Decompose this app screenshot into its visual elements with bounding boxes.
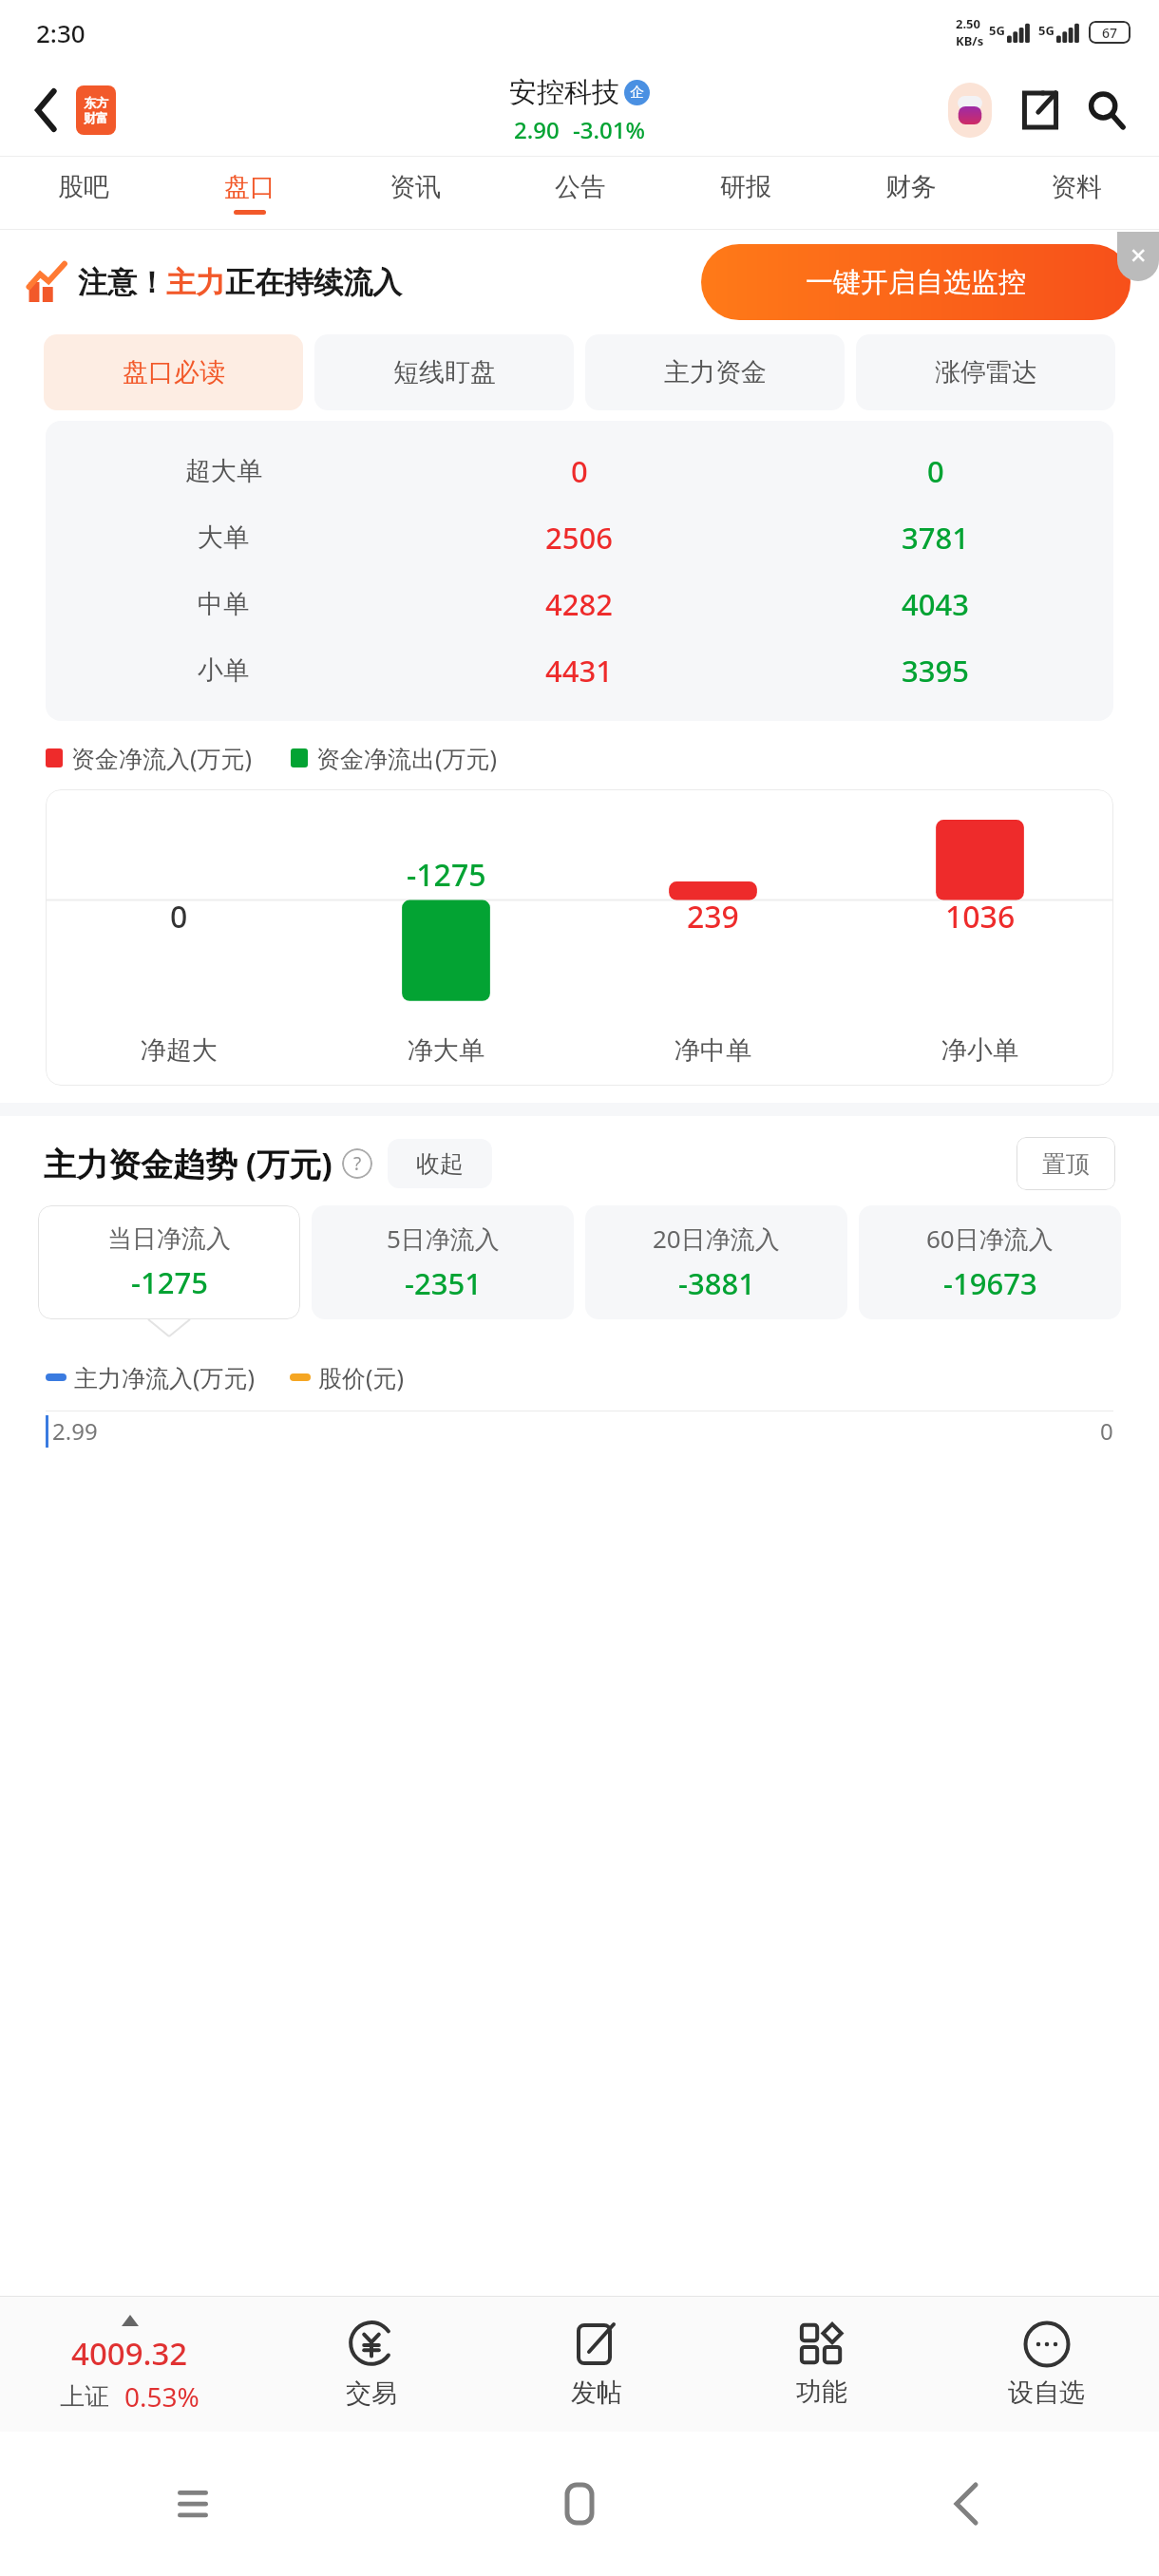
staticText: 正在持续流入 xyxy=(225,264,402,301)
button[interactable]: 设自选 xyxy=(934,2297,1159,2432)
staticText: 发帖 xyxy=(571,2377,622,2409)
staticText: -19673 xyxy=(943,1263,1037,1303)
staticText: 功能 xyxy=(796,2376,847,2408)
staticText: 研报 xyxy=(720,171,771,203)
button[interactable]: 60日净流入 xyxy=(859,1205,1121,1319)
staticText: 净小单 xyxy=(941,1034,1018,1067)
staticText: 一键开启自选监控 xyxy=(806,265,1026,300)
button[interactable]: East Money xyxy=(76,85,116,135)
staticText: 股吧 xyxy=(58,171,109,203)
button[interactable]: Home xyxy=(558,2482,601,2526)
staticText: 0.53% xyxy=(124,2378,199,2415)
staticText: -1275 xyxy=(131,1262,208,1302)
button[interactable]: 盘口 xyxy=(166,157,332,229)
staticText: 5G xyxy=(989,22,1005,39)
staticText: 盘口必读 xyxy=(123,356,225,388)
staticText: -3881 xyxy=(678,1263,755,1303)
staticText: 60日净流入 xyxy=(926,1222,1054,1256)
button[interactable]: 交易 xyxy=(258,2297,484,2432)
button[interactable]: 功能 xyxy=(709,2297,934,2432)
button[interactable]: 股吧 xyxy=(0,157,166,229)
staticText: 4431 xyxy=(545,651,613,691)
button[interactable]: 当日净流入 xyxy=(38,1205,300,1319)
staticText: 资料 xyxy=(1051,171,1102,203)
staticText: 超大单 xyxy=(185,455,262,487)
staticText: 主力资金 xyxy=(664,356,767,388)
staticText: ✕ xyxy=(1130,244,1148,269)
button[interactable]: Recents xyxy=(171,2482,215,2526)
staticText: 资金净流入(万元) xyxy=(71,742,253,774)
button[interactable]: 一键开启自选监控 xyxy=(701,244,1130,320)
staticText: 4282 xyxy=(545,584,613,624)
staticText: 67 xyxy=(1102,24,1118,42)
staticText: 4009.32 xyxy=(71,2332,188,2375)
staticText: 0 xyxy=(1100,1415,1113,1447)
staticText: 资讯 xyxy=(389,171,441,203)
button[interactable]: 主力资金 xyxy=(585,334,845,410)
button[interactable]: Back xyxy=(25,88,68,132)
staticText: 注意！ xyxy=(78,264,166,301)
staticText: 3781 xyxy=(902,518,969,558)
staticText: 主力净流入(万元) xyxy=(74,1361,256,1393)
staticText: 财务 xyxy=(885,171,937,203)
button[interactable]: 资讯 xyxy=(332,157,498,229)
button[interactable]: 盘口必读 xyxy=(44,334,303,410)
staticText: 主力资金趋势 (万元) xyxy=(44,1142,332,1185)
staticText: 4043 xyxy=(902,584,969,624)
staticText: 0 xyxy=(170,896,188,938)
staticText: 涨停雷达 xyxy=(935,356,1037,388)
staticText: 净超大 xyxy=(141,1034,218,1067)
button[interactable]: 资料 xyxy=(994,157,1159,229)
staticText: 大单 xyxy=(198,521,249,554)
button[interactable]: 5日净流入 xyxy=(312,1205,574,1319)
staticText: 设自选 xyxy=(1008,2377,1085,2409)
staticText: -3.01% xyxy=(573,114,645,145)
staticText: 5日净流入 xyxy=(387,1222,500,1256)
staticText: ? xyxy=(353,1151,362,1176)
staticText: -2351 xyxy=(405,1263,482,1303)
button[interactable]: 20日净流入 xyxy=(585,1205,847,1319)
staticText: 2:30 xyxy=(36,16,85,49)
staticText: 置顶 xyxy=(1042,1149,1090,1179)
staticText: 公告 xyxy=(555,171,606,203)
staticText: 3395 xyxy=(902,651,969,691)
staticText: 当日净流入 xyxy=(107,1223,231,1255)
button[interactable]: 财务 xyxy=(828,157,994,229)
staticText: 收起 xyxy=(416,1149,464,1179)
button[interactable]: 涨停雷达 xyxy=(856,334,1115,410)
staticText: 0 xyxy=(927,451,944,491)
button[interactable]: Help xyxy=(342,1148,372,1179)
staticText: KB/s xyxy=(956,32,984,49)
button[interactable]: Back xyxy=(944,2482,988,2526)
button[interactable]: 4009.32 xyxy=(0,2297,258,2432)
button[interactable]: 发帖 xyxy=(484,2297,709,2432)
staticText: 上证 xyxy=(60,2381,109,2413)
staticText: 2.99 xyxy=(52,1415,98,1447)
button[interactable]: 短线盯盘 xyxy=(314,334,574,410)
staticText: 中单 xyxy=(198,588,249,620)
button[interactable]: Share xyxy=(1013,83,1068,138)
staticText: 股价(元) xyxy=(318,1361,405,1393)
staticText: 2.50 xyxy=(956,15,980,32)
staticText: -1275 xyxy=(407,854,486,896)
staticText: 短线盯盘 xyxy=(393,356,496,388)
staticText: 20日净流入 xyxy=(653,1222,780,1256)
button[interactable]: Close xyxy=(1117,232,1159,281)
staticText: 净大单 xyxy=(408,1034,484,1067)
staticText: 0 xyxy=(571,451,588,491)
button[interactable]: 公告 xyxy=(498,157,663,229)
staticText: 主力 xyxy=(166,264,225,301)
staticText: 东方 xyxy=(84,95,108,110)
button[interactable]: 研报 xyxy=(663,157,828,229)
button[interactable]: 收起 xyxy=(388,1139,492,1188)
staticText: 企 xyxy=(630,84,644,102)
staticText: 盘口 xyxy=(224,171,275,203)
staticText: 2506 xyxy=(545,518,613,558)
staticText: 安控科技 xyxy=(509,75,619,110)
staticText: 财富 xyxy=(84,110,108,125)
button[interactable]: 置顶 xyxy=(1016,1137,1115,1190)
staticText: 5G xyxy=(1038,22,1054,39)
button[interactable]: Search xyxy=(1079,83,1134,138)
button[interactable]: Assistant xyxy=(940,81,999,140)
staticText: 239 xyxy=(687,896,739,938)
